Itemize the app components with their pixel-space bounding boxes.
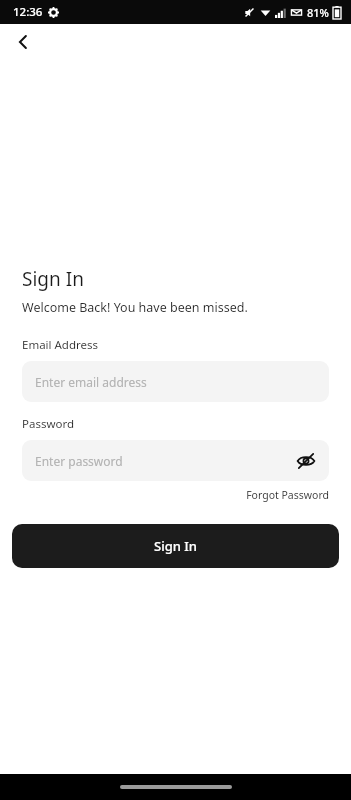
button[interactable]: Back bbox=[5, 24, 41, 60]
staticText: Enter password bbox=[35, 453, 123, 469]
staticText: Welcome Back! You have been missed. bbox=[22, 299, 248, 316]
button[interactable]: Toggle password visibility bbox=[291, 446, 321, 476]
staticText: Sign In bbox=[22, 266, 84, 292]
staticText: Sign In bbox=[154, 537, 198, 555]
staticText: Password bbox=[22, 416, 75, 432]
button[interactable]: Sign In bbox=[12, 524, 339, 568]
button[interactable]: Enter email address bbox=[22, 361, 329, 402]
staticText: 12:36 bbox=[13, 4, 43, 20]
button[interactable]: Enter password bbox=[22, 440, 329, 481]
staticText: Email Address bbox=[22, 337, 99, 353]
staticText: 81% bbox=[307, 5, 329, 20]
button[interactable]: Forgot Password bbox=[246, 488, 329, 502]
staticText: Forgot Password bbox=[246, 488, 329, 502]
staticText: Enter email address bbox=[35, 374, 147, 390]
